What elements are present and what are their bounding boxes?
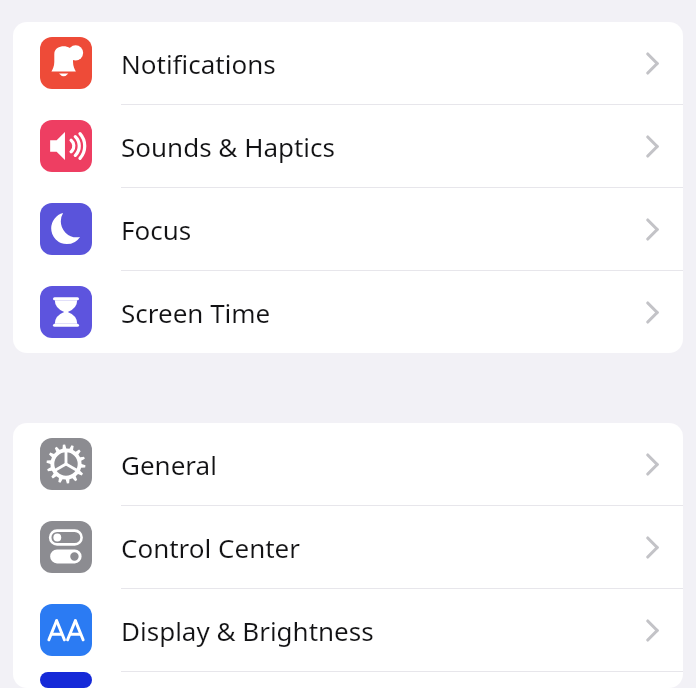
staticText: Notifications [121,46,644,81]
button[interactable]: Notifications [13,22,683,104]
other: Open [644,535,659,560]
other: Open [644,51,659,76]
button[interactable]: Display & Brightness [13,589,683,671]
staticText: Control Center [121,530,644,565]
staticText: General [121,447,644,482]
other: Open [644,618,659,643]
button[interactable]: Screen Time [13,271,683,353]
staticText: Focus [121,212,644,247]
button[interactable] [13,672,683,688]
button[interactable]: Control Center [13,506,683,588]
other: Open [644,300,659,325]
other: Open [644,452,659,477]
button[interactable]: Sounds & Haptics [13,105,683,187]
button[interactable]: General [13,423,683,505]
staticText: Display & Brightness [121,613,644,648]
button[interactable]: Focus [13,188,683,270]
staticText: Sounds & Haptics [121,129,644,164]
staticText: Screen Time [121,295,644,330]
other: Open [644,134,659,159]
other: Open [644,217,659,242]
